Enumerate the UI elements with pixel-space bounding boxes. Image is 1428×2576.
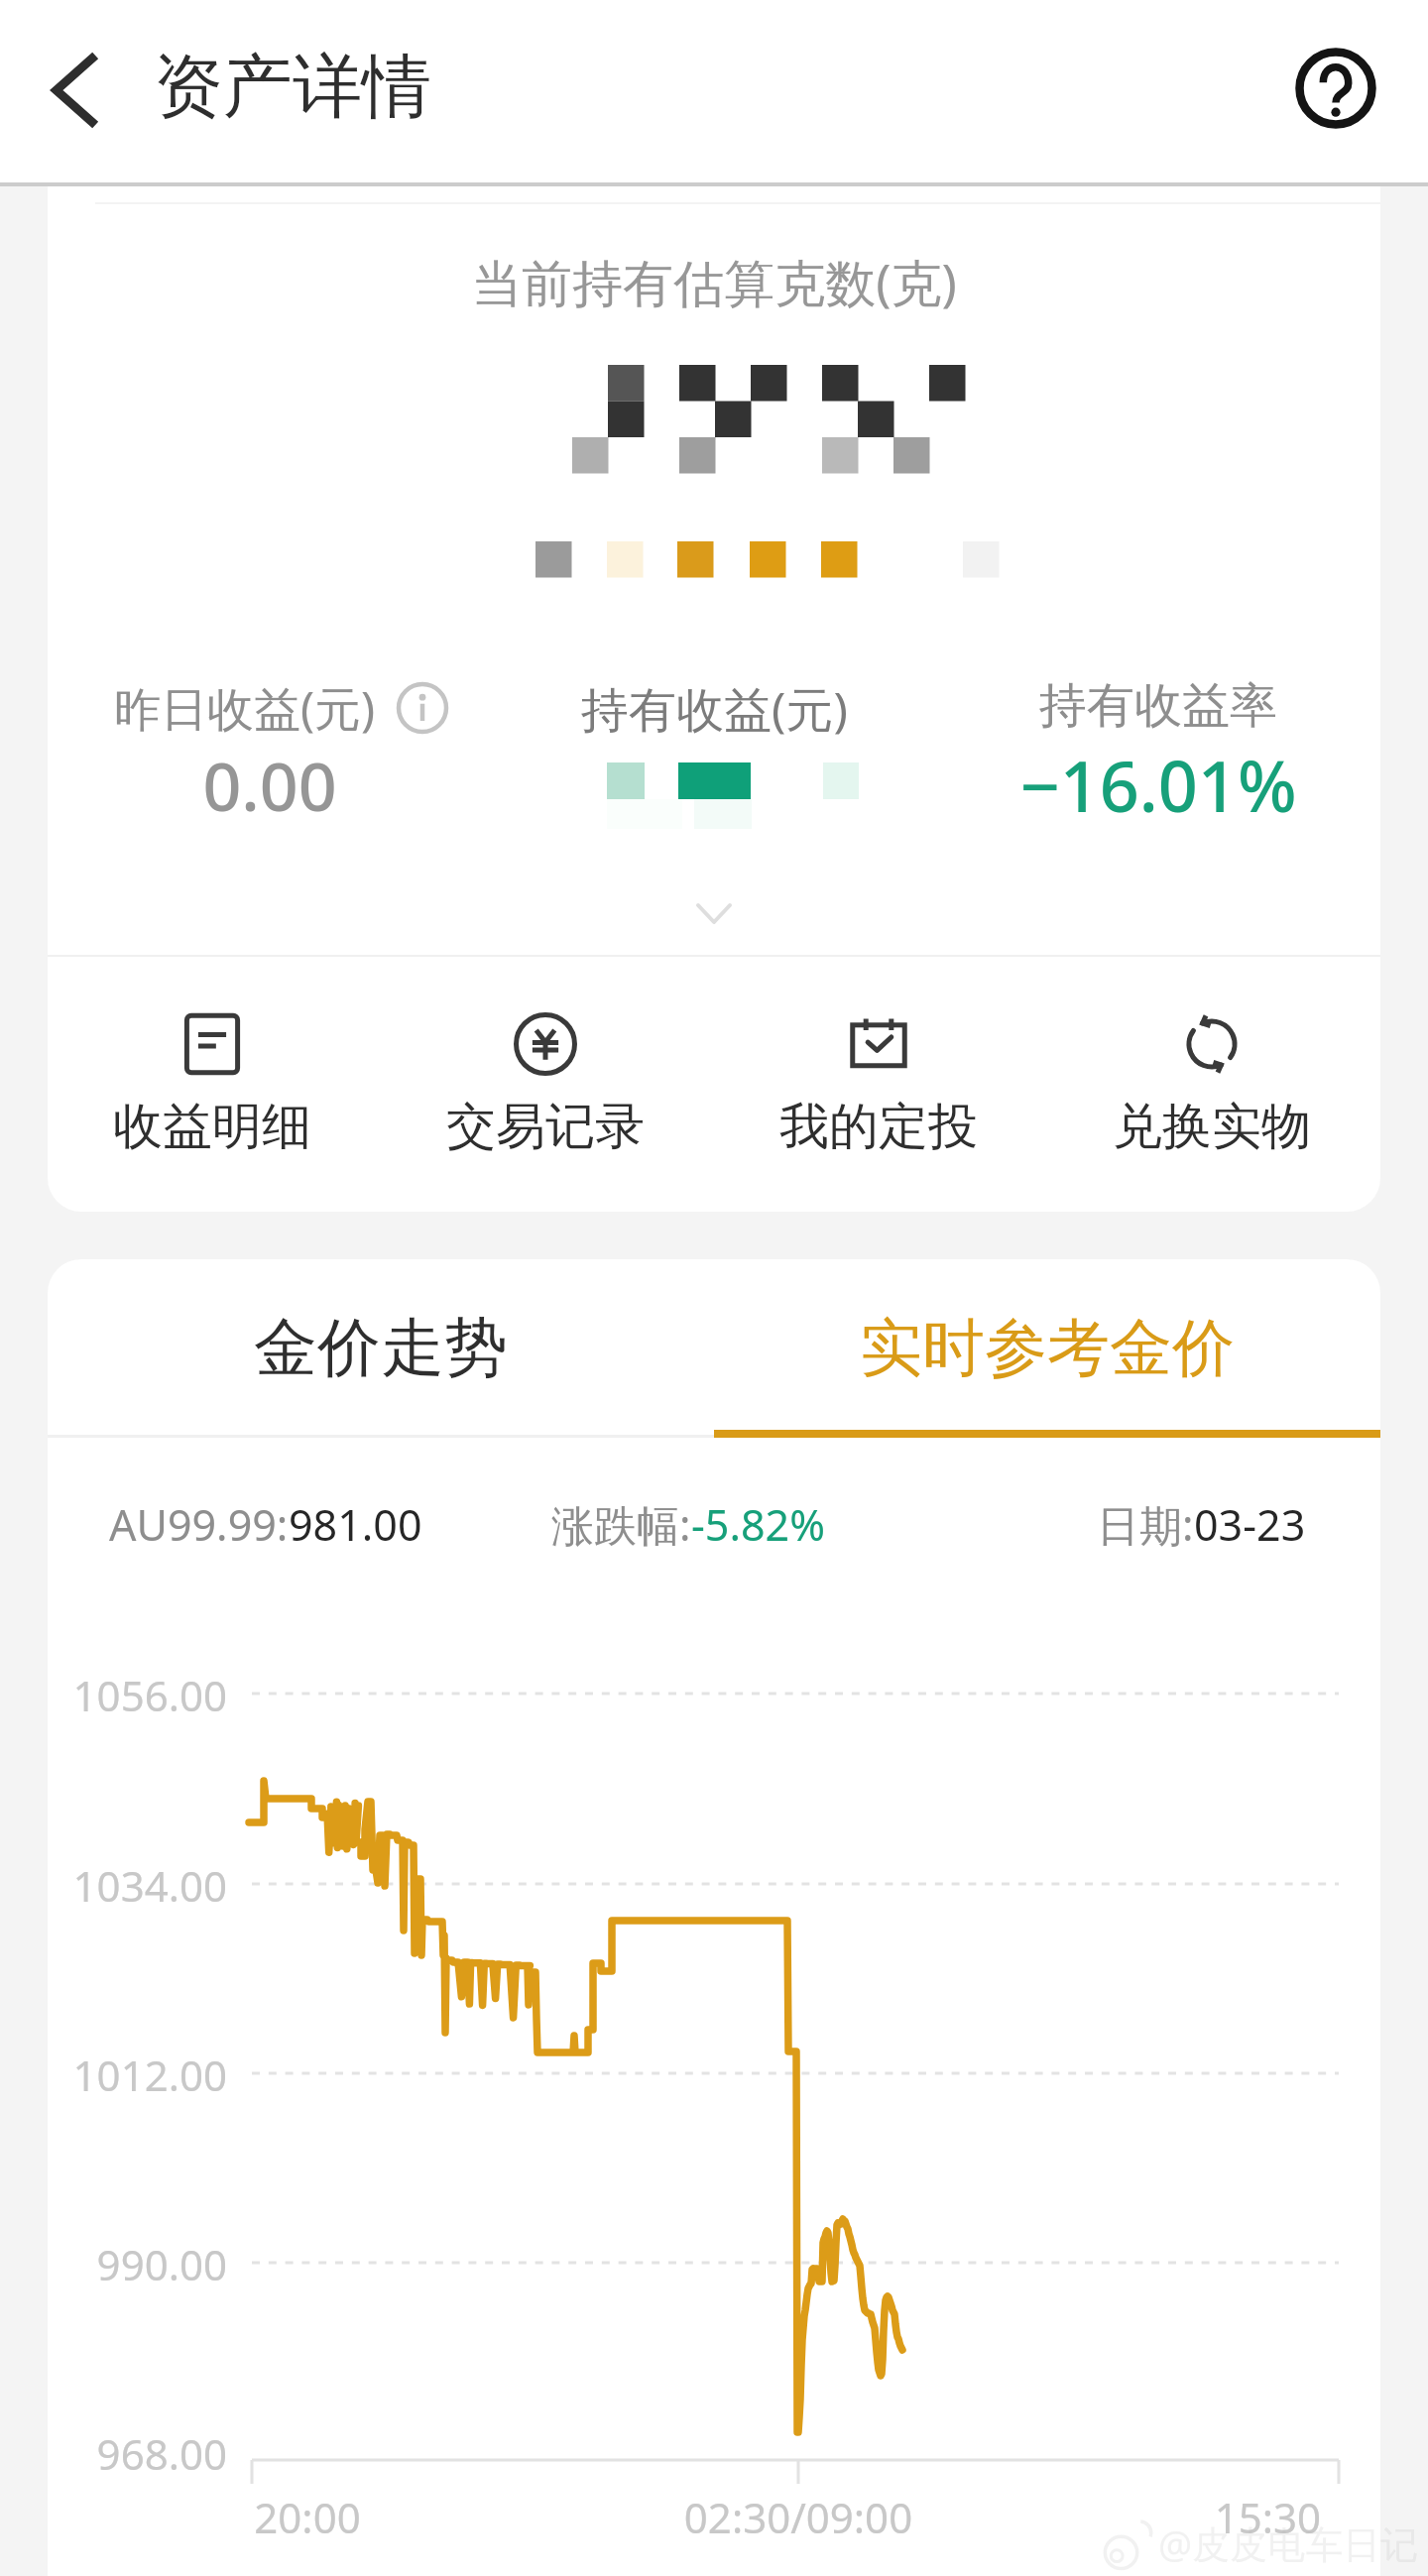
button[interactable]: 我的定投 bbox=[712, 1012, 1045, 1211]
staticText: 资产详情 bbox=[154, 44, 431, 131]
staticText: 990.00 bbox=[48, 2236, 227, 2292]
staticText: 03-23 bbox=[1194, 1495, 1306, 1554]
staticText: 交易记录 bbox=[446, 1096, 645, 1158]
staticText: -5.82% bbox=[691, 1495, 825, 1554]
staticText: 981.00 bbox=[289, 1495, 422, 1554]
staticText: 968.00 bbox=[48, 2425, 227, 2482]
staticText: 当前持有估算克数(克) bbox=[48, 247, 1380, 316]
button[interactable]: 实时参考金价 bbox=[714, 1259, 1380, 1437]
button[interactable]: Help bbox=[1282, 35, 1389, 142]
button[interactable]: Back bbox=[26, 41, 125, 140]
staticText: 持有收益率 bbox=[1039, 676, 1277, 736]
button[interactable]: 收益明细 bbox=[48, 1012, 379, 1211]
staticText: 实时参考金价 bbox=[860, 1309, 1235, 1387]
staticText: 昨日收益(元) bbox=[114, 676, 376, 740]
staticText: 20:00 bbox=[228, 2489, 387, 2545]
staticText: −16.01% bbox=[936, 738, 1380, 832]
staticText: 02:30/09:00 bbox=[610, 2489, 987, 2545]
staticText: 我的定投 bbox=[779, 1096, 978, 1158]
staticText: 金价走势 bbox=[254, 1308, 508, 1388]
staticText: 兑换实物 bbox=[1113, 1096, 1311, 1158]
staticText: 日期: bbox=[1097, 1495, 1194, 1554]
staticText: 0.00 bbox=[48, 739, 492, 831]
staticText: 1056.00 bbox=[48, 1667, 227, 1723]
staticText: 收益明细 bbox=[113, 1096, 311, 1158]
button[interactable]: 交易记录 bbox=[379, 1012, 712, 1211]
staticText: 持有收益(元) bbox=[581, 676, 848, 742]
staticText: @皮皮电车日记 bbox=[1158, 2517, 1419, 2569]
button[interactable]: 金价走势 bbox=[48, 1259, 714, 1437]
button[interactable]: 兑换实物 bbox=[1045, 1012, 1378, 1211]
staticText: 涨跌幅: bbox=[551, 1495, 691, 1554]
staticText: 15:30 bbox=[1162, 2489, 1321, 2545]
staticText: 1012.00 bbox=[48, 2047, 227, 2103]
staticText: AU99.99: bbox=[109, 1495, 289, 1554]
staticText: 1034.00 bbox=[48, 1857, 227, 1914]
